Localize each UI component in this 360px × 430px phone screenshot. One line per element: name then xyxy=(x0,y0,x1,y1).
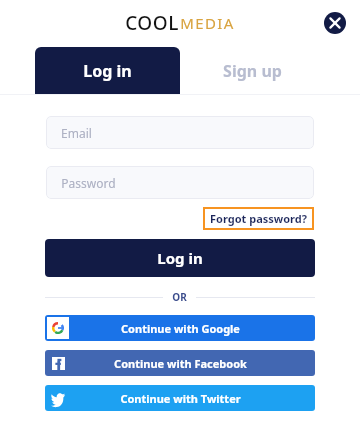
staticText: Sign up xyxy=(223,60,282,82)
staticText: Forgot password? xyxy=(210,211,307,226)
staticText: Log in xyxy=(83,60,132,82)
staticText: Continue with Facebook xyxy=(114,356,247,371)
staticText: OR xyxy=(172,290,187,304)
staticText: MEDIA xyxy=(180,13,235,33)
button[interactable]: Close xyxy=(324,12,346,34)
button[interactable]: Continue with Facebook xyxy=(45,350,315,376)
button[interactable]: Log in xyxy=(35,47,180,94)
button[interactable]: Continue with Google xyxy=(45,315,315,341)
button[interactable]: Continue with Twitter xyxy=(45,385,315,411)
staticText: Email xyxy=(61,125,92,141)
staticText: Password xyxy=(61,175,116,191)
button[interactable]: Log in xyxy=(45,239,315,277)
staticText: Continue with Twitter xyxy=(120,391,241,406)
staticText: COOL xyxy=(125,10,179,36)
button[interactable]: Forgot password? xyxy=(210,211,307,226)
button[interactable]: Password xyxy=(46,166,314,199)
button[interactable]: Email xyxy=(46,116,314,149)
staticText: Log in xyxy=(157,248,203,268)
staticText: Continue with Google xyxy=(121,321,240,336)
button[interactable]: Sign up xyxy=(180,47,325,94)
